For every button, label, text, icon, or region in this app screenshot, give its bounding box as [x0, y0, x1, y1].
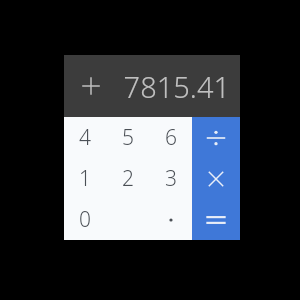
button[interactable]: 4 — [64, 117, 106, 158]
staticText: 1 — [79, 164, 91, 193]
staticText: 6 — [165, 123, 177, 152]
button[interactable]: Multiply — [192, 158, 240, 199]
button[interactable]: 5 — [106, 117, 149, 158]
other: Pending operation plus — [80, 75, 102, 97]
button[interactable]: Decimal point — [149, 199, 192, 240]
button[interactable]: 3 — [149, 158, 192, 199]
staticText: 5 — [122, 123, 134, 152]
button[interactable]: 6 — [149, 117, 192, 158]
button[interactable]: Equals — [192, 199, 240, 240]
staticText: 0 — [79, 205, 91, 234]
button[interactable]: Divide — [192, 117, 240, 158]
button[interactable]: 0 — [64, 199, 106, 240]
button[interactable]: 1 — [64, 158, 106, 199]
button[interactable]: 2 — [106, 158, 149, 199]
button[interactable]: Pending operation plus — [64, 55, 240, 117]
staticText: 7815.41 — [123, 67, 230, 106]
staticText: 2 — [122, 164, 134, 193]
staticText: 4 — [79, 123, 91, 152]
staticText: 3 — [165, 164, 177, 193]
